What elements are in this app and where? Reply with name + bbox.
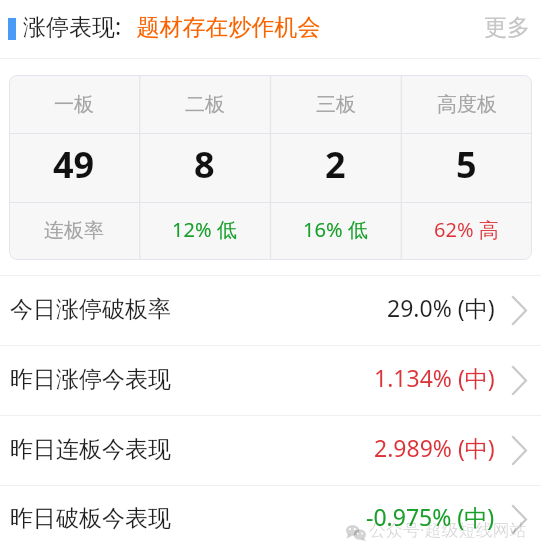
- staticText: 今日涨停破板率: [10, 295, 171, 324]
- staticText: 更多: [484, 13, 530, 42]
- staticText: 12% 低: [172, 216, 237, 243]
- staticText: 高度板: [437, 92, 497, 117]
- staticText: 5: [456, 140, 477, 189]
- staticText: 49: [53, 140, 95, 189]
- other: Open details: [512, 296, 527, 325]
- staticText: 昨日破板今表现: [10, 504, 171, 533]
- other: Open details: [512, 505, 527, 534]
- staticText: 三板: [316, 92, 356, 117]
- button[interactable]: 昨日连板今表现: [0, 416, 541, 485]
- other: Open details: [512, 366, 527, 395]
- staticText: 29.0% (中): [387, 292, 495, 323]
- staticText: 昨日涨停今表现: [10, 365, 171, 394]
- staticText: 二板: [185, 92, 225, 117]
- other: Open details: [512, 436, 527, 465]
- staticText: 一板: [54, 92, 94, 117]
- staticText: 涨停表现: 题材存在炒作机会: [23, 10, 321, 41]
- staticText: 2: [325, 140, 346, 189]
- other: WeChat: [346, 525, 366, 540]
- staticText: 昨日连板今表现: [10, 435, 171, 464]
- staticText: 16% 低: [303, 216, 368, 243]
- staticText: -0.975% (中): [366, 501, 495, 532]
- button[interactable]: 涨停表现: 题材存在炒作机会: [0, 0, 541, 58]
- staticText: 2.989% (中): [374, 432, 495, 463]
- staticText: 62% 高: [434, 216, 499, 243]
- button[interactable]: 昨日破板今表现: [0, 486, 541, 552]
- button[interactable]: 更多: [484, 0, 530, 58]
- staticText: 连板率: [44, 218, 104, 243]
- staticText: 公众号·超级短线网站: [369, 518, 527, 541]
- staticText: 1.134% (中): [374, 362, 495, 393]
- button[interactable]: 昨日涨停今表现: [0, 346, 541, 415]
- button[interactable]: 今日涨停破板率: [0, 276, 541, 345]
- staticText: 8: [194, 140, 215, 189]
